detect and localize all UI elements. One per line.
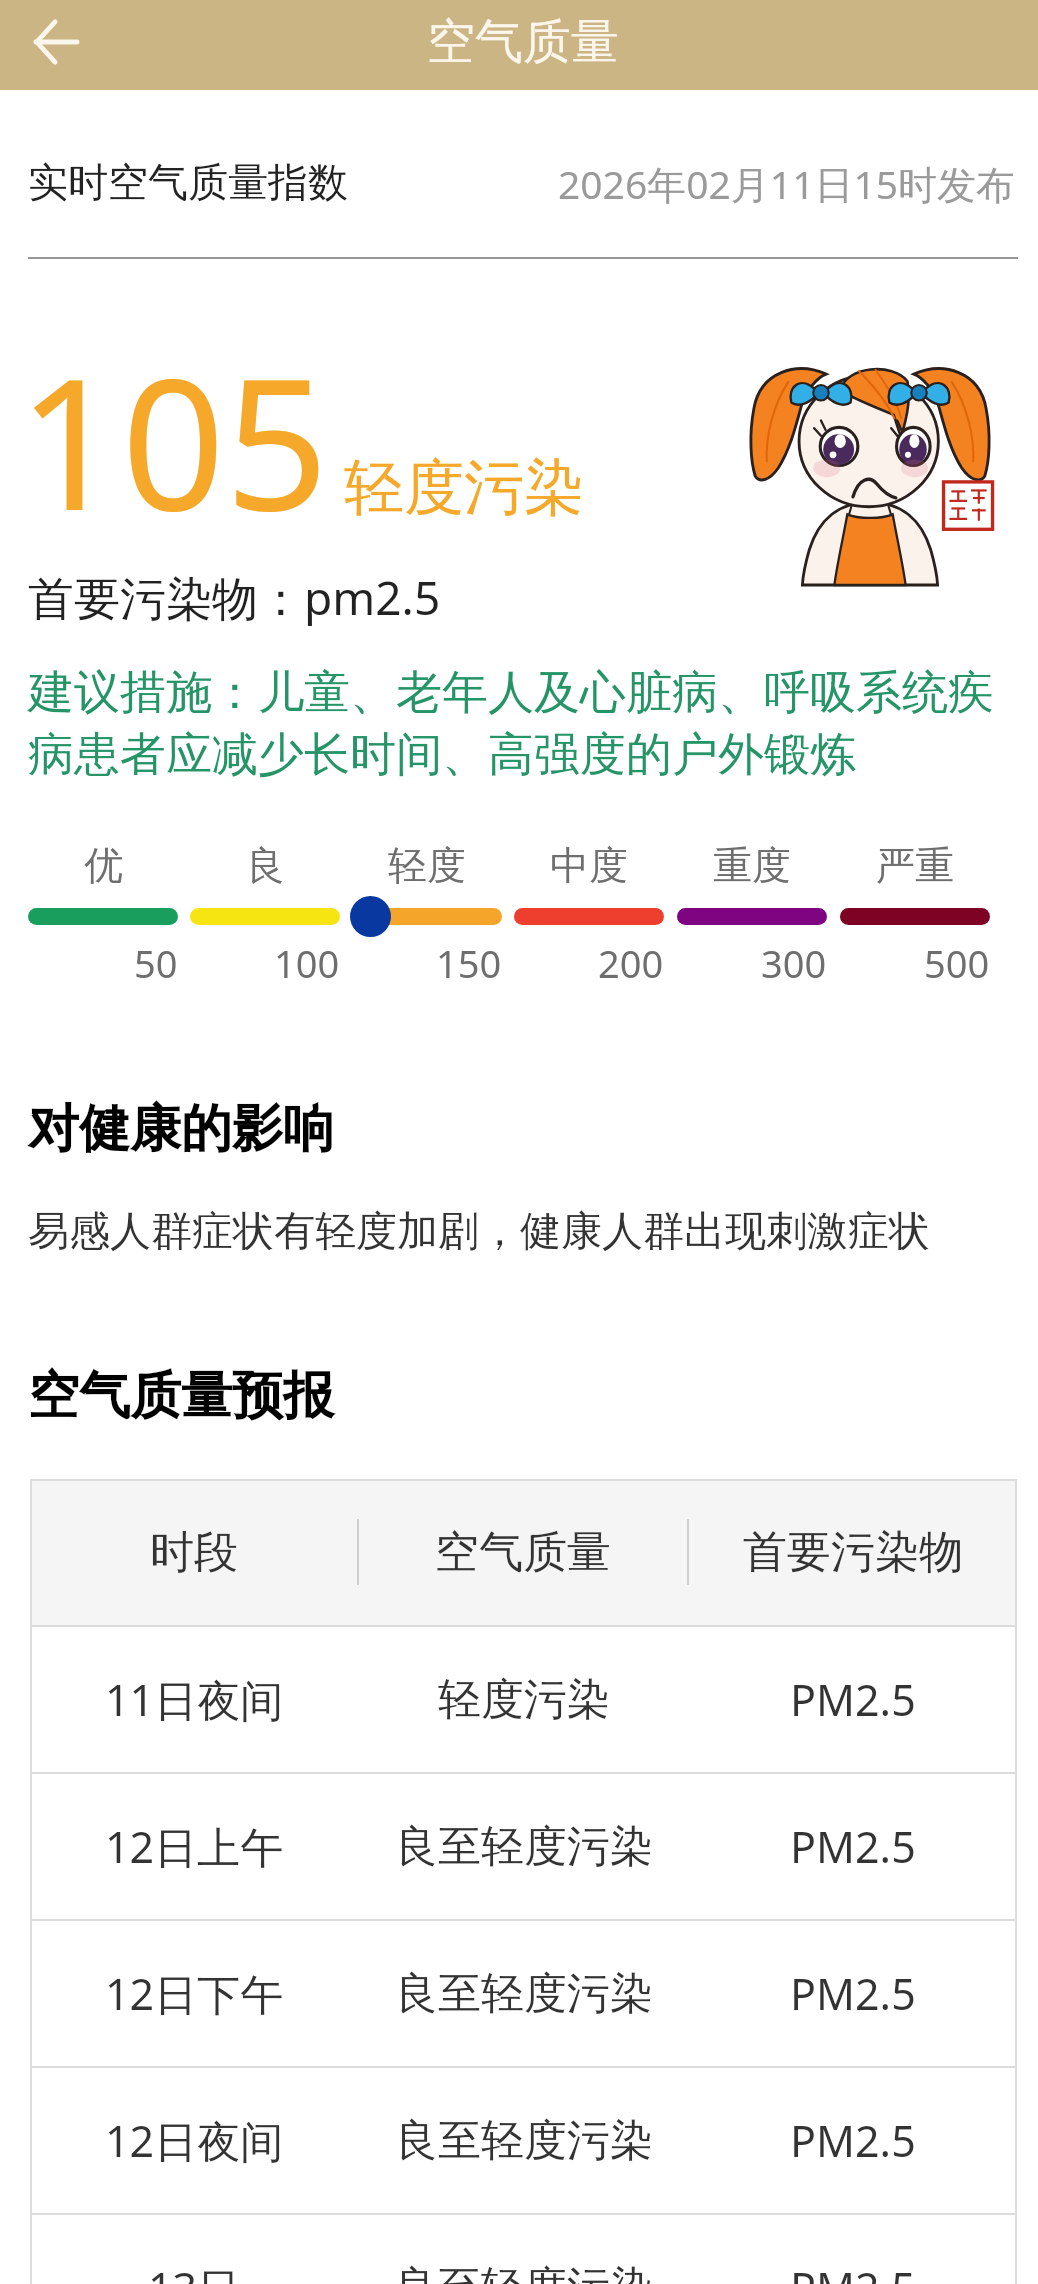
staticText: PM2.5 xyxy=(790,2258,916,2284)
staticText: 良至轻度污染 xyxy=(395,2261,653,2284)
staticText: 2026年02月11日15时发布 xyxy=(558,157,1016,210)
staticText: 良 xyxy=(246,841,285,890)
staticText: PM2.5 xyxy=(790,1670,916,1729)
staticText: 首要污染物 xyxy=(743,1525,963,1580)
button[interactable]: 12日夜间 xyxy=(30,2068,1017,2213)
staticText: 150 xyxy=(436,937,502,989)
staticText: 重度 xyxy=(713,841,791,890)
staticText: 轻度污染 xyxy=(438,1673,610,1727)
staticText: 时段 xyxy=(150,1525,238,1580)
staticText: 良至轻度污染 xyxy=(395,2114,653,2168)
staticText: 12日下午 xyxy=(105,1964,284,2023)
staticText: PM2.5 xyxy=(790,1964,916,2023)
staticText: 105 xyxy=(18,317,329,564)
staticText: 良至轻度污染 xyxy=(395,1967,653,2021)
button[interactable]: 11日夜间 xyxy=(30,1627,1017,1772)
staticText: 中度 xyxy=(550,841,628,890)
staticText: 11日夜间 xyxy=(105,1670,284,1729)
staticText: 12日上午 xyxy=(105,1817,284,1876)
staticText: 优 xyxy=(84,841,123,890)
staticText: 建议措施：儿童、老年人及心脏病、呼吸系统疾病患者应减少长时间、高强度的户外锻炼 xyxy=(28,664,1020,784)
staticText: 轻度污染 xyxy=(344,450,584,526)
staticText: 对健康的影响 xyxy=(28,1097,334,1161)
staticText: 50 xyxy=(134,937,178,989)
staticText: 500 xyxy=(924,937,990,989)
staticText: 200 xyxy=(598,937,664,989)
button[interactable]: 12日上午 xyxy=(30,1774,1017,1919)
staticText: 空气质量预报 xyxy=(28,1364,334,1428)
staticText: 13日 xyxy=(148,2258,241,2284)
staticText: 100 xyxy=(274,937,340,989)
staticText: PM2.5 xyxy=(790,1817,916,1876)
staticText: 严重 xyxy=(876,841,954,890)
staticText: 实时空气质量指数 xyxy=(28,157,348,207)
staticText: 空气质量 xyxy=(427,12,619,72)
staticText: 12日夜间 xyxy=(105,2111,284,2170)
staticText: 轻度 xyxy=(388,841,466,890)
staticText: 空气质量 xyxy=(435,1525,611,1580)
staticText: 良至轻度污染 xyxy=(395,1820,653,1874)
staticText: 首要污染物：pm2.5 xyxy=(28,566,441,629)
button[interactable]: 13日 xyxy=(30,2215,1017,2284)
staticText: 300 xyxy=(761,937,827,989)
button[interactable]: Back xyxy=(11,0,101,90)
staticText: PM2.5 xyxy=(790,2111,916,2170)
button[interactable]: 12日下午 xyxy=(30,1921,1017,2066)
staticText: 易感人群症状有轻度加剧，健康人群出现刺激症状 xyxy=(28,1206,930,1258)
